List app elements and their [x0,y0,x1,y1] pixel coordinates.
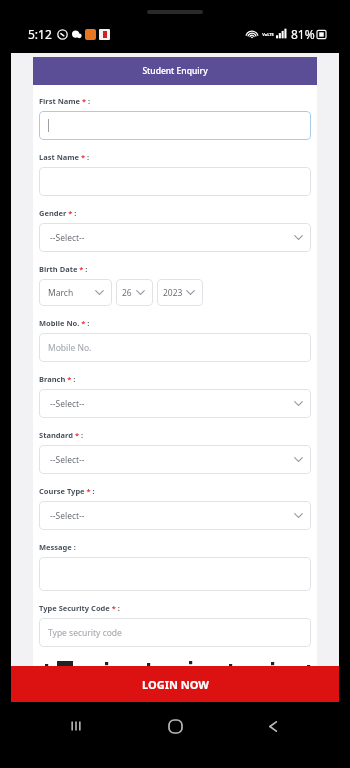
staticText: Mobile No. * : [39,318,90,328]
button[interactable]: --Select-- [39,445,311,474]
button[interactable]: --Select-- [39,501,311,530]
button[interactable]: Type security code [39,618,311,647]
button[interactable]: --Select-- [39,223,311,252]
staticText: Type security code [48,627,122,639]
staticText: LOGIN NOW [142,677,209,692]
staticText: Message : [39,542,76,552]
staticText: --Select-- [50,454,85,466]
staticText: March [48,287,74,299]
staticText: Birth Date * : [39,264,88,274]
button[interactable]: 2023 [157,279,203,306]
staticText: Type Security Code * : [39,603,120,613]
staticText: --Select-- [50,232,85,244]
button[interactable]: LOGIN NOW [11,666,339,702]
staticText: First Name * : [39,96,91,106]
staticText: Course Type * : [39,486,95,496]
staticText: Mobile No. [48,342,92,354]
staticText: 5:12 [28,26,52,42]
staticText: Gender * : [39,208,77,218]
staticText: Branch * : [39,374,76,384]
button[interactable]: Recent apps [53,703,99,749]
button[interactable]: March [39,279,112,306]
staticText: Last Name * : [39,152,90,162]
button[interactable]: Student Enquiry [33,57,317,85]
staticText: --Select-- [50,510,85,522]
button[interactable]: 26 [116,279,153,306]
staticText: 2023 [163,287,183,299]
button[interactable] [39,167,311,196]
staticText: 81% [291,26,315,42]
staticText: Student Enquiry [142,65,208,77]
button[interactable] [39,557,311,591]
staticText: Standard * : [39,430,84,440]
button[interactable]: Back [251,703,297,749]
button[interactable] [39,111,311,140]
button[interactable]: --Select-- [39,389,311,418]
staticText: 26 [122,287,132,299]
staticText: VoLTE [262,32,274,37]
staticText: --Select-- [50,398,85,410]
button[interactable]: Mobile No. [39,333,311,362]
button[interactable]: Home [152,703,198,749]
